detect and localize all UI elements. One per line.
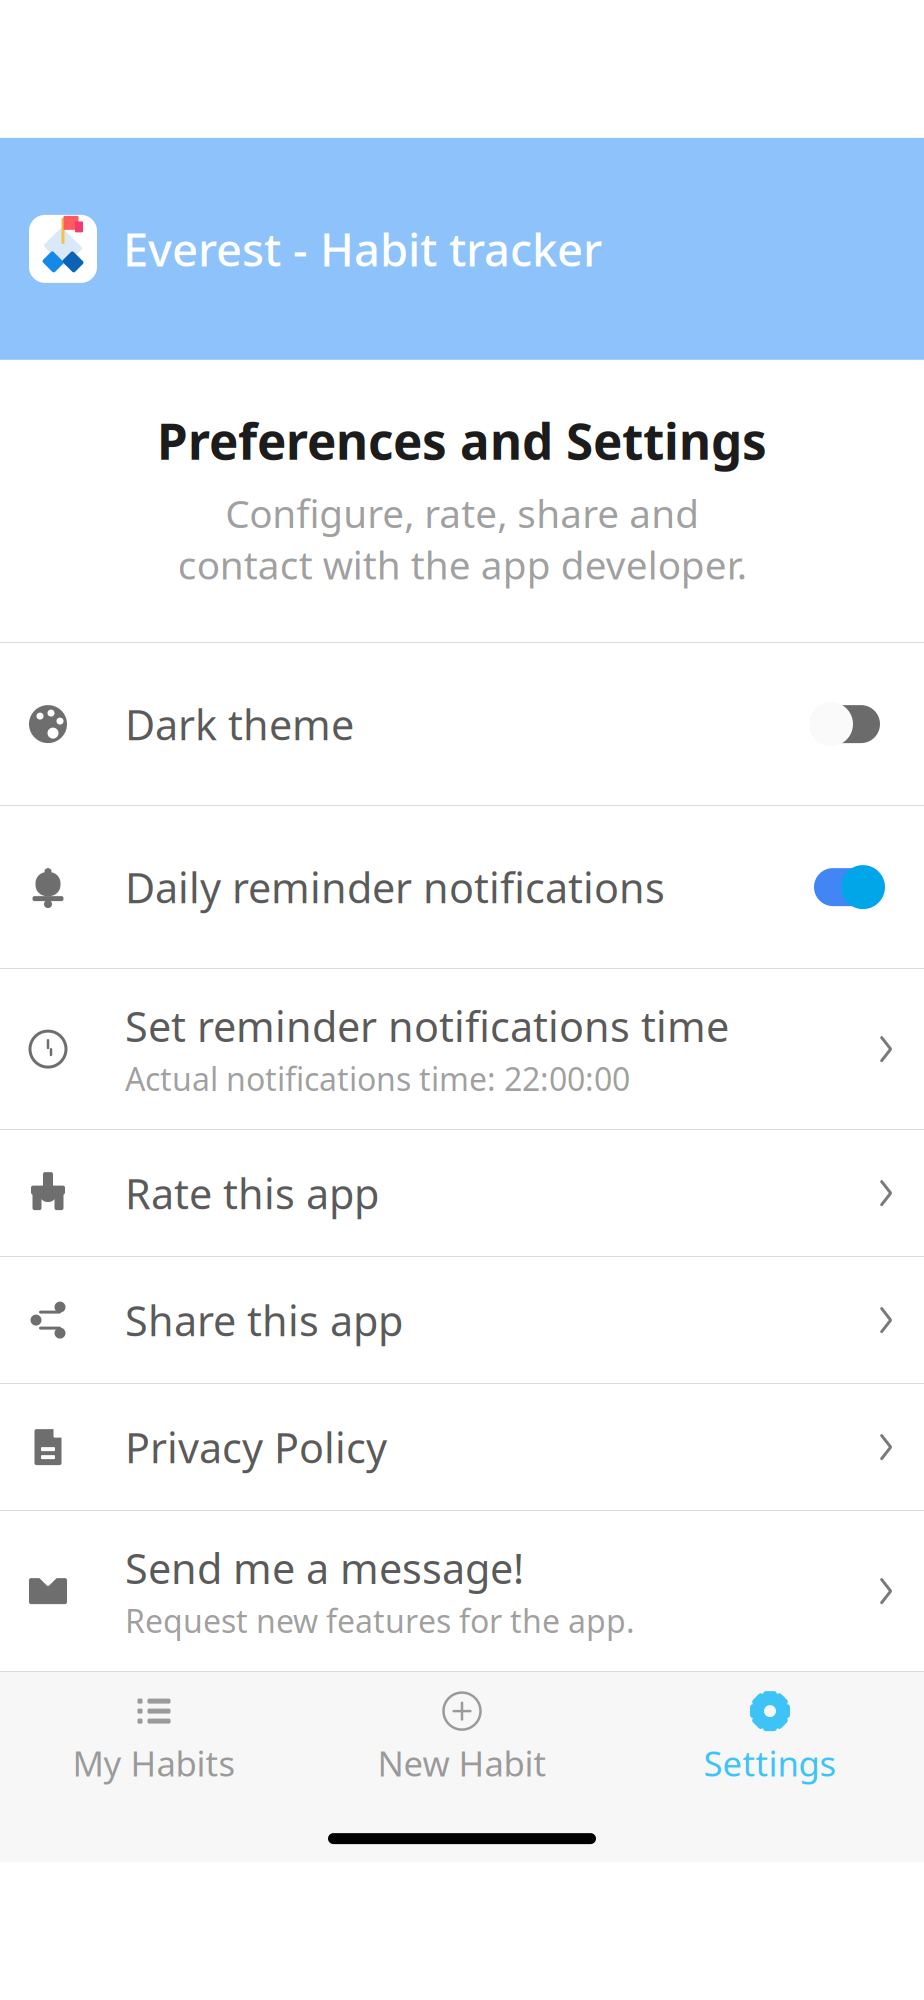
button[interactable]: Share this app <box>0 1257 924 1383</box>
button[interactable]: Daily reminder notifications <box>0 806 924 968</box>
button[interactable]: Privacy Policy <box>0 1384 924 1510</box>
staticText: Rate this app <box>125 1166 379 1221</box>
button[interactable]: My Habits <box>0 1672 308 1800</box>
staticText: Daily reminder notifications <box>125 860 665 915</box>
staticText: Send me a message! <box>125 1540 524 1595</box>
button[interactable]: Send me a message! <box>0 1511 924 1671</box>
button[interactable]: Settings <box>616 1672 924 1800</box>
staticText: Settings <box>703 1740 836 1786</box>
staticText: Dark theme <box>125 697 354 752</box>
staticText: Request new features for the app. <box>125 1599 635 1642</box>
staticText: New Habit <box>377 1740 546 1786</box>
button[interactable]: Set reminder notifications time <box>0 969 924 1129</box>
staticText: Share this app <box>125 1293 403 1348</box>
staticText: Actual notifications time: 22:00:00 <box>125 1057 630 1100</box>
staticText: My Habits <box>72 1740 235 1786</box>
staticText: Preferences and Settings <box>157 408 767 473</box>
staticText: Configure, rate, share and contact with … <box>177 487 746 590</box>
button[interactable]: Dark theme <box>0 643 924 805</box>
staticText: Privacy Policy <box>125 1420 387 1475</box>
staticText: Everest - Habit tracker <box>123 219 602 279</box>
button[interactable]: New Habit <box>308 1672 616 1800</box>
staticText: Set reminder notifications time <box>125 998 729 1053</box>
button[interactable]: Rate this app <box>0 1130 924 1256</box>
